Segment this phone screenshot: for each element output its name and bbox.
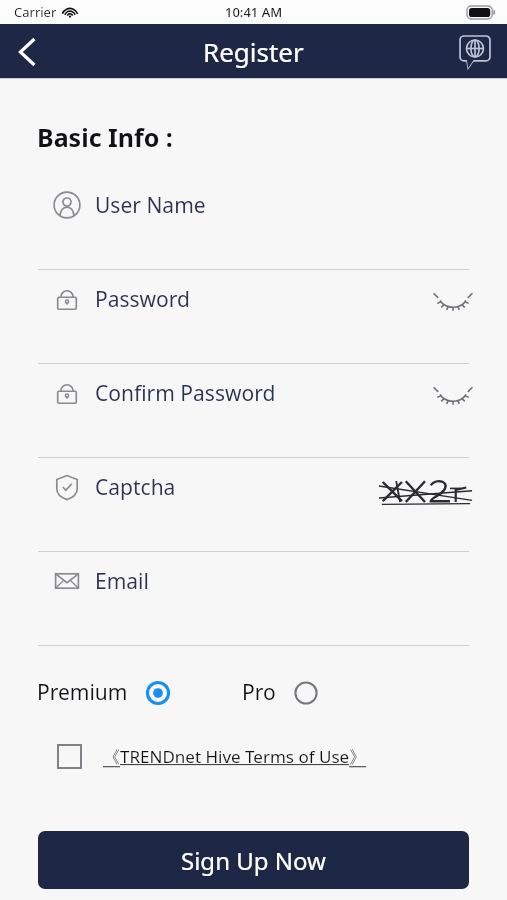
staticText: Carrier [14,3,57,21]
staticText: 《TRENDnet Hive Terms of Use》 [103,745,367,768]
staticText: 10:41 AM [225,3,283,21]
button[interactable]: Premium [37,678,170,707]
staticText: User Name [95,191,206,220]
button[interactable]: Refresh captcha [377,470,473,510]
staticText: Confirm Password [95,379,276,408]
button[interactable]: Show password [435,382,471,408]
button[interactable]: Confirm Password [0,364,507,458]
button[interactable]: 《TRENDnet Hive Terms of Use》 [58,745,507,768]
button[interactable]: Back [0,24,56,79]
button[interactable]: Email [0,552,507,646]
staticText: Email [95,567,149,596]
button[interactable]: Pro [242,678,318,707]
staticText: Pro [242,678,276,707]
button[interactable]: Captcha [0,458,507,552]
button[interactable]: Show password [435,288,471,314]
staticText: Premium [37,678,128,707]
staticText: Sign Up Now [181,844,326,877]
staticText: Register [203,34,304,69]
staticText: Basic Info : [37,120,173,154]
staticText: Password [95,285,190,314]
button[interactable]: Sign Up Now [38,831,469,889]
button[interactable]: Language [451,28,499,76]
button[interactable]: Password [0,270,507,364]
button[interactable]: User Name [0,176,507,270]
staticText: Captcha [95,473,176,502]
